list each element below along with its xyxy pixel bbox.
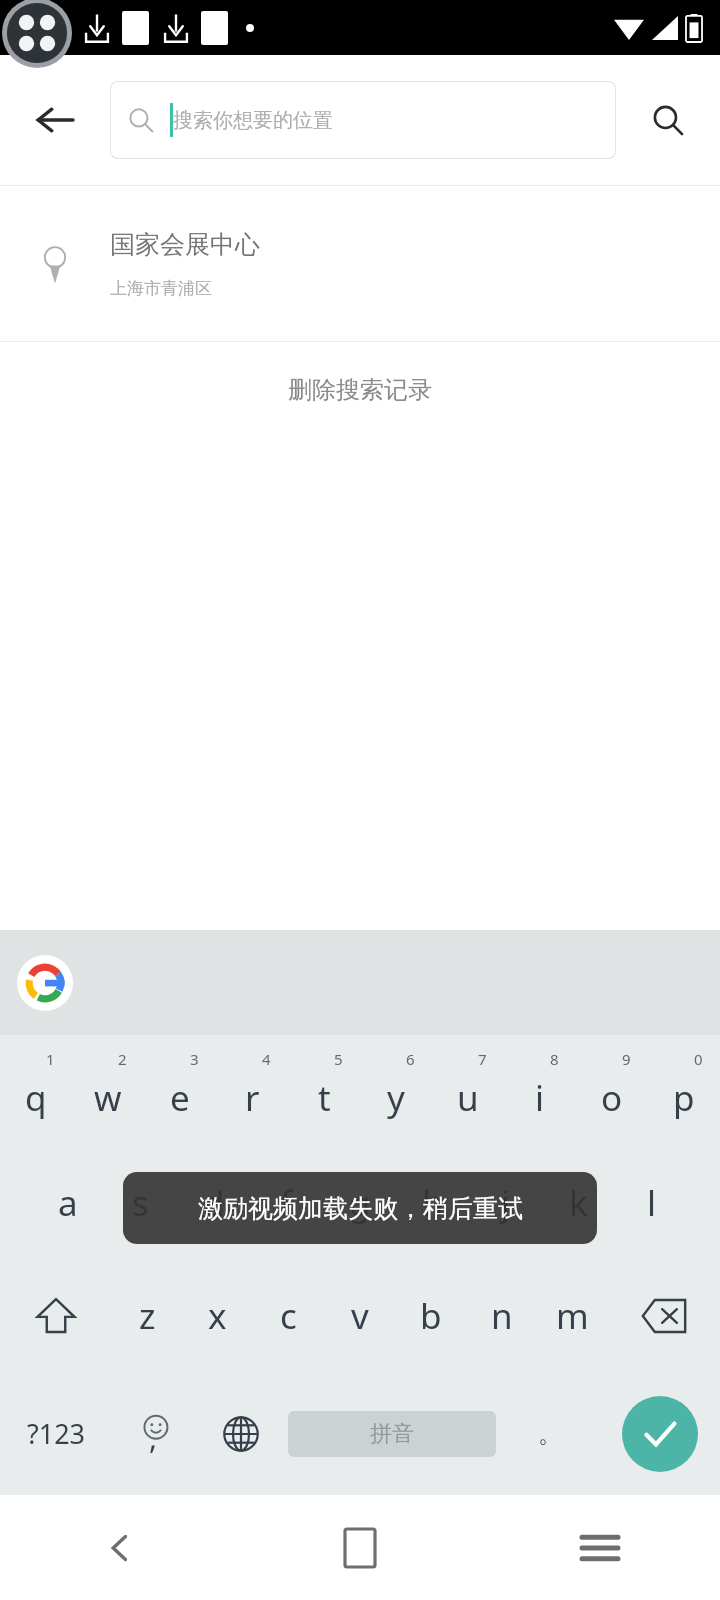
button[interactable]: 2 <box>72 1035 144 1145</box>
staticText: 国家会展中心 <box>110 229 260 260</box>
staticText: i <box>535 1074 545 1122</box>
button[interactable]: ?123 <box>0 1372 112 1495</box>
button[interactable]: Shift <box>0 1260 112 1372</box>
staticText: 3 <box>190 1049 199 1069</box>
staticText: m <box>556 1292 589 1340</box>
button[interactable]: f <box>250 1145 323 1260</box>
staticText: 1 <box>46 1049 55 1069</box>
button[interactable]: 5 <box>288 1035 360 1145</box>
staticText: , <box>149 1417 158 1458</box>
button[interactable]: 3 <box>144 1035 216 1145</box>
staticText: y <box>387 1074 405 1122</box>
button[interactable]: n <box>466 1260 537 1372</box>
button[interactable]: Back <box>0 1495 240 1600</box>
button[interactable]: b <box>395 1260 466 1372</box>
staticText: z <box>139 1292 156 1340</box>
staticText: k <box>569 1179 588 1227</box>
staticText: b <box>420 1292 442 1340</box>
staticText: 拼音 <box>370 1420 414 1448</box>
staticText: ?123 <box>27 1415 86 1452</box>
staticText: v <box>351 1292 369 1340</box>
staticText: n <box>491 1292 513 1340</box>
staticText: 7 <box>478 1049 487 1069</box>
staticText: h <box>422 1179 444 1227</box>
button[interactable]: Enter <box>622 1396 698 1472</box>
button[interactable]: c <box>253 1260 324 1372</box>
staticText: 2 <box>118 1049 127 1069</box>
staticText: 9 <box>622 1049 631 1069</box>
staticText: p <box>673 1074 695 1122</box>
staticText: t <box>318 1074 331 1122</box>
button[interactable]: Back <box>0 55 110 185</box>
button[interactable]: h <box>396 1145 469 1260</box>
button[interactable]: x <box>182 1260 253 1372</box>
button[interactable]: s <box>104 1145 177 1260</box>
button[interactable]: 4 <box>216 1035 288 1145</box>
staticText: e <box>170 1074 190 1122</box>
staticText: l <box>647 1179 657 1227</box>
staticText: x <box>208 1292 227 1340</box>
button[interactable]: k <box>542 1145 615 1260</box>
button[interactable]: 搜索你想要的位置 <box>110 81 616 159</box>
button[interactable]: g <box>323 1145 396 1260</box>
staticText: 5 <box>334 1049 343 1069</box>
button[interactable]: 删除搜索记录 <box>0 342 720 437</box>
staticText: 删除搜索记录 <box>288 375 432 405</box>
button[interactable]: z <box>112 1260 182 1372</box>
button[interactable]: 国家会展中心 <box>0 186 720 341</box>
button[interactable]: j <box>469 1145 542 1260</box>
button[interactable]: 1 <box>0 1035 72 1145</box>
button[interactable]: 9 <box>576 1035 648 1145</box>
button[interactable]: 7 <box>432 1035 504 1145</box>
button[interactable]: Home <box>240 1495 480 1600</box>
staticText: 激励视频加载失败，稍后重试 <box>198 1193 523 1224</box>
staticText: w <box>94 1074 122 1122</box>
staticText: q <box>25 1074 47 1122</box>
staticText: 搜索你想要的位置 <box>173 108 333 133</box>
button[interactable]: l <box>615 1145 688 1260</box>
button[interactable]: Search <box>616 55 720 185</box>
staticText: a <box>58 1179 78 1227</box>
staticText: s <box>132 1179 149 1227</box>
button[interactable]: 6 <box>360 1035 432 1145</box>
button[interactable]: Google <box>17 955 73 1011</box>
staticText: 上海市青浦区 <box>110 278 212 299</box>
staticText: f <box>280 1179 293 1227</box>
button[interactable]: Emoji and comma <box>112 1372 198 1495</box>
staticText: d <box>203 1179 225 1227</box>
staticText: 8 <box>550 1049 559 1069</box>
button[interactable]: m <box>537 1260 608 1372</box>
button[interactable]: d <box>177 1145 250 1260</box>
staticText: 。 <box>538 1419 562 1449</box>
button[interactable]: a <box>32 1145 104 1260</box>
staticText: u <box>457 1074 479 1122</box>
staticText: 0 <box>694 1049 703 1069</box>
staticText: 4 <box>262 1049 271 1069</box>
button[interactable]: Backspace <box>608 1260 720 1372</box>
staticText: c <box>280 1292 297 1340</box>
button[interactable]: 。 <box>500 1372 600 1495</box>
staticText: g <box>349 1179 371 1227</box>
staticText: o <box>601 1074 623 1122</box>
button[interactable]: Floating assistant <box>2 0 72 68</box>
button[interactable]: 0 <box>648 1035 720 1145</box>
staticText: j <box>501 1179 511 1227</box>
button[interactable]: 拼音 <box>288 1411 496 1457</box>
button[interactable]: 8 <box>504 1035 576 1145</box>
button[interactable]: v <box>324 1260 395 1372</box>
staticText: 6 <box>406 1049 415 1069</box>
button[interactable]: Change language <box>198 1372 284 1495</box>
button[interactable]: Menu <box>480 1495 720 1600</box>
staticText: r <box>245 1074 260 1122</box>
